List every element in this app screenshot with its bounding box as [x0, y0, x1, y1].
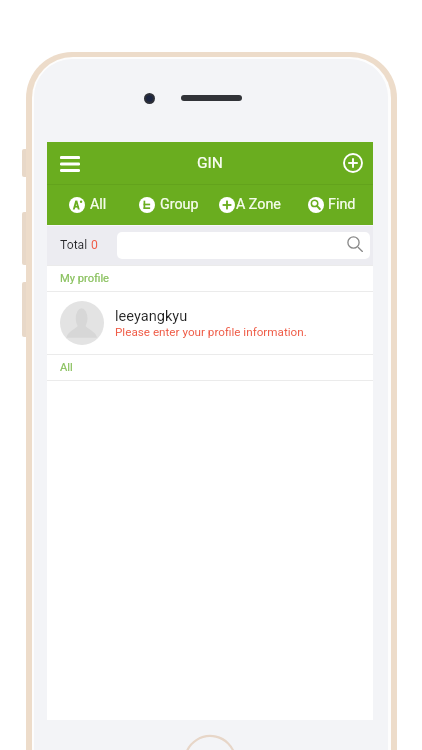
staticText: leeyangkyu	[115, 307, 188, 324]
staticText: A Zone	[236, 196, 281, 213]
staticText: Group	[160, 196, 199, 213]
button[interactable]: A Zone	[209, 184, 291, 225]
staticText: All	[90, 196, 107, 213]
staticText: My profile	[60, 272, 110, 285]
staticText: GIN	[197, 154, 223, 172]
button[interactable]: Search field	[117, 232, 370, 259]
button[interactable]: Group	[128, 184, 209, 225]
button[interactable]: All	[47, 184, 128, 225]
button[interactable]: Menu	[51, 148, 88, 180]
staticText: Please enter your profile information.	[115, 325, 307, 339]
staticText: All	[60, 361, 73, 374]
staticText: Find	[328, 196, 356, 213]
button[interactable]: leeyangkyu	[47, 292, 373, 354]
staticText: 0	[91, 238, 98, 252]
button[interactable]: Find	[291, 184, 373, 225]
button[interactable]: Add	[335, 147, 371, 179]
staticText: Total	[60, 238, 91, 252]
